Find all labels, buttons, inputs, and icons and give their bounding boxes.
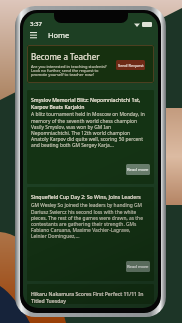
- button[interactable]: Sinquefield Cup Day 2: So Wins, Joins Le…: [27, 187, 154, 281]
- staticText: Are you interested in teaching students?…: [31, 64, 113, 77]
- staticText: GM Wesley So joined the leaders by handi…: [31, 202, 147, 239]
- staticText: Read more: [127, 167, 149, 173]
- staticText: Home: [48, 30, 70, 40]
- button[interactable]: Read more: [126, 261, 150, 272]
- staticText: Sinquefield Cup Day 2: So Wins, Joins Le…: [31, 194, 141, 201]
- button[interactable]: Hikaru Nakamura Scores First Perfect 11/…: [27, 284, 154, 304]
- staticText: Read more: [127, 264, 149, 270]
- button[interactable]: Become a Teacher: [27, 45, 154, 83]
- button[interactable]: Send Request: [116, 60, 145, 70]
- staticText: Smyslov Memorial Blitz: Nepomniachtchi 1…: [31, 97, 147, 110]
- button[interactable]: Smyslov Memorial Blitz: Nepomniachtchi 1…: [27, 90, 154, 184]
- button[interactable]: Open navigation menu: [27, 28, 39, 42]
- staticText: Hikaru Nakamura Scores First Perfect 11/…: [31, 291, 147, 304]
- staticText: Send Request: [118, 63, 144, 68]
- button[interactable]: Read more: [126, 164, 150, 175]
- staticText: A blitz tournament held in Moscow on Mon…: [31, 111, 147, 148]
- staticText: Become a Teacher: [31, 51, 100, 62]
- staticText: 3:37: [30, 20, 42, 28]
